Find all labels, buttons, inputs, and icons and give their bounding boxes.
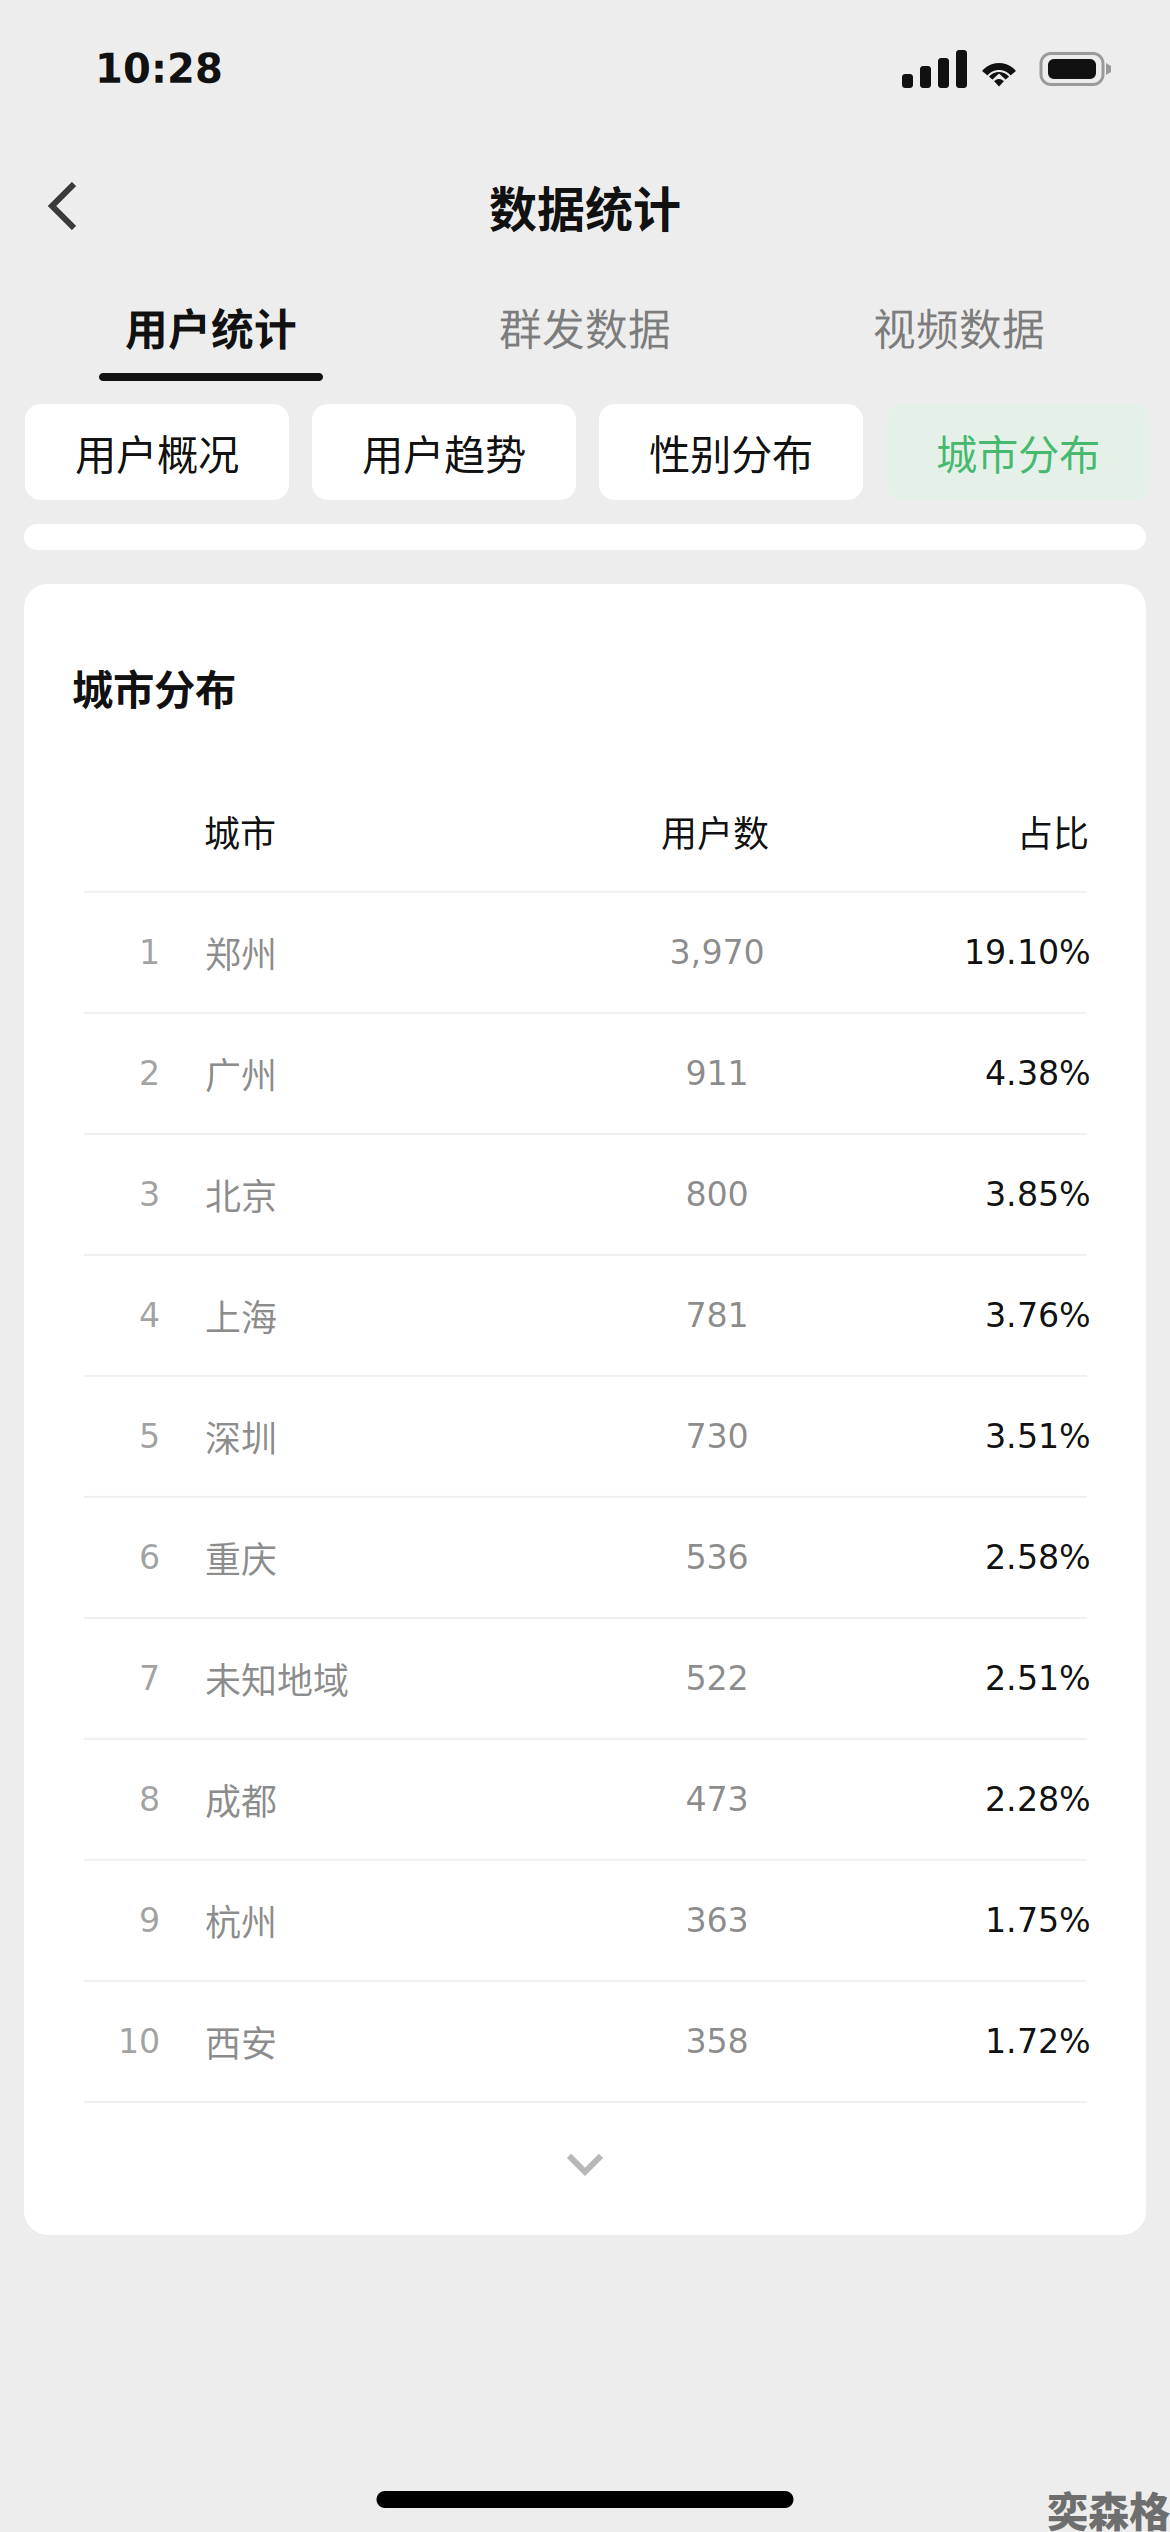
staticText: 杭州 xyxy=(205,1894,277,1946)
button[interactable]: 视频数据 xyxy=(772,256,1146,384)
button[interactable]: 返回 xyxy=(15,156,111,256)
staticText: 郑州 xyxy=(205,926,277,978)
staticText: 城市 xyxy=(204,805,276,857)
staticText: 未知地域 xyxy=(205,1652,349,1704)
button[interactable]: 群发数据 xyxy=(398,256,772,384)
staticText: 8 xyxy=(139,1780,160,1819)
staticText: 781 xyxy=(685,1296,748,1335)
staticText: 2.51% xyxy=(985,1659,1091,1698)
staticText: 522 xyxy=(685,1659,748,1698)
staticText: 用户统计 xyxy=(125,296,297,358)
staticText: 3 xyxy=(139,1175,160,1214)
button[interactable]: 性别分布 xyxy=(599,404,863,500)
staticText: 800 xyxy=(685,1175,748,1214)
staticText: 6 xyxy=(139,1538,160,1577)
staticText: 10:28 xyxy=(95,46,223,92)
staticText: 1.75% xyxy=(985,1901,1091,1940)
button[interactable]: 用户概况 xyxy=(25,404,289,500)
staticText: 用户概况 xyxy=(75,422,239,482)
staticText: 363 xyxy=(685,1901,748,1940)
staticText: 730 xyxy=(685,1417,748,1456)
staticText: 5 xyxy=(139,1417,160,1456)
staticText: 群发数据 xyxy=(499,296,671,358)
button[interactable]: 用户统计 xyxy=(24,256,398,384)
staticText: 重庆 xyxy=(205,1531,277,1583)
staticText: 1 xyxy=(139,933,160,972)
staticText: 用户数 xyxy=(661,805,769,857)
staticText: 1.72% xyxy=(985,2022,1091,2061)
staticText: 7 xyxy=(139,1659,160,1698)
button[interactable]: 城市分布 xyxy=(886,404,1150,500)
staticText: 性别分布 xyxy=(649,422,813,482)
staticText: 用户趋势 xyxy=(362,422,526,482)
staticText: 上海 xyxy=(205,1289,277,1341)
staticText: 3.76% xyxy=(985,1296,1091,1335)
staticText: 成都 xyxy=(205,1773,277,1825)
staticText: 视频数据 xyxy=(873,296,1045,358)
staticText: 4 xyxy=(139,1296,160,1335)
staticText: 广州 xyxy=(205,1047,277,1099)
staticText: 城市分布 xyxy=(936,422,1100,482)
staticText: 2.58% xyxy=(985,1538,1091,1577)
staticText: 3.85% xyxy=(985,1175,1091,1214)
staticText: 2 xyxy=(139,1054,160,1093)
staticText: 911 xyxy=(685,1054,748,1093)
staticText: 358 xyxy=(685,2022,748,2061)
staticText: 536 xyxy=(685,1538,748,1577)
staticText: 深圳 xyxy=(205,1410,277,1462)
staticText: 占比 xyxy=(1017,805,1089,857)
staticText: 10 xyxy=(118,2022,160,2061)
staticText: 473 xyxy=(685,1780,748,1819)
staticText: 3,970 xyxy=(669,933,764,972)
staticText: 3.51% xyxy=(985,1417,1091,1456)
staticText: 西安 xyxy=(205,2015,277,2067)
button[interactable]: 用户趋势 xyxy=(312,404,576,500)
staticText: 9 xyxy=(139,1901,160,1940)
staticText: 2.28% xyxy=(985,1780,1091,1819)
button[interactable]: 展开更多 xyxy=(24,2103,1146,2235)
staticText: 城市分布 xyxy=(72,657,236,717)
staticText: 数据统计 xyxy=(489,171,681,241)
staticText: 奕森格 xyxy=(1047,2479,1170,2532)
staticText: 北京 xyxy=(205,1168,277,1220)
staticText: 19.10% xyxy=(964,933,1091,972)
staticText: 4.38% xyxy=(985,1054,1091,1093)
